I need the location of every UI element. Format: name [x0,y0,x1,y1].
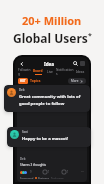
staticText: Tech news [51,177,64,179]
staticText: Business [38,177,49,179]
staticText: * [88,31,92,41]
staticText: More [71,79,79,83]
staticText: people's inclination towards bankruptcy … [20,134,78,138]
staticText: Sponsored [20,177,34,179]
button[interactable]: Live [44,68,56,76]
button[interactable]: people's inclination towards bankruptcy … [17,87,87,182]
staticText: Shares 3 thoughts [20,163,47,167]
button[interactable]: HOT [20,79,26,83]
staticText: Live [47,70,53,74]
button[interactable]: Reactions [20,170,32,174]
staticText: Deb [19,88,25,92]
staticText: 9 [30,170,32,174]
button[interactable]: More [71,79,83,83]
staticText: Board [33,69,43,73]
button[interactable]: Search [72,60,79,67]
button[interactable]: More options [79,60,86,67]
staticText: ··· [81,170,84,174]
button[interactable]: Board [31,68,44,76]
button[interactable]: Soni [7,127,91,147]
staticText: HOT [20,79,26,83]
staticText: good people to follow [19,101,65,107]
staticText: Deb [20,157,26,161]
staticText: Happy to be a mascot! [22,136,69,142]
button[interactable]: Notifications [56,68,74,76]
staticText: Following [18,68,31,76]
staticText: Soni [22,130,28,134]
staticText: 1 [67,170,69,174]
staticText: Great community with lots of [19,94,81,100]
button[interactable]: Share [62,170,69,174]
button[interactable]: Ideas [74,68,86,76]
staticText: Topics [30,78,41,83]
staticText: Ideas [76,70,85,74]
staticText: Notifications [56,68,74,76]
button[interactable]: Deb [4,85,90,112]
staticText: Idea [44,61,54,67]
staticText: 20+ Million [22,13,82,28]
button[interactable]: Comments [43,170,50,174]
staticText: 1 [48,170,50,174]
button[interactable]: Back [18,60,25,67]
button[interactable]: Following [18,68,31,76]
staticText: Global Users [13,30,88,46]
